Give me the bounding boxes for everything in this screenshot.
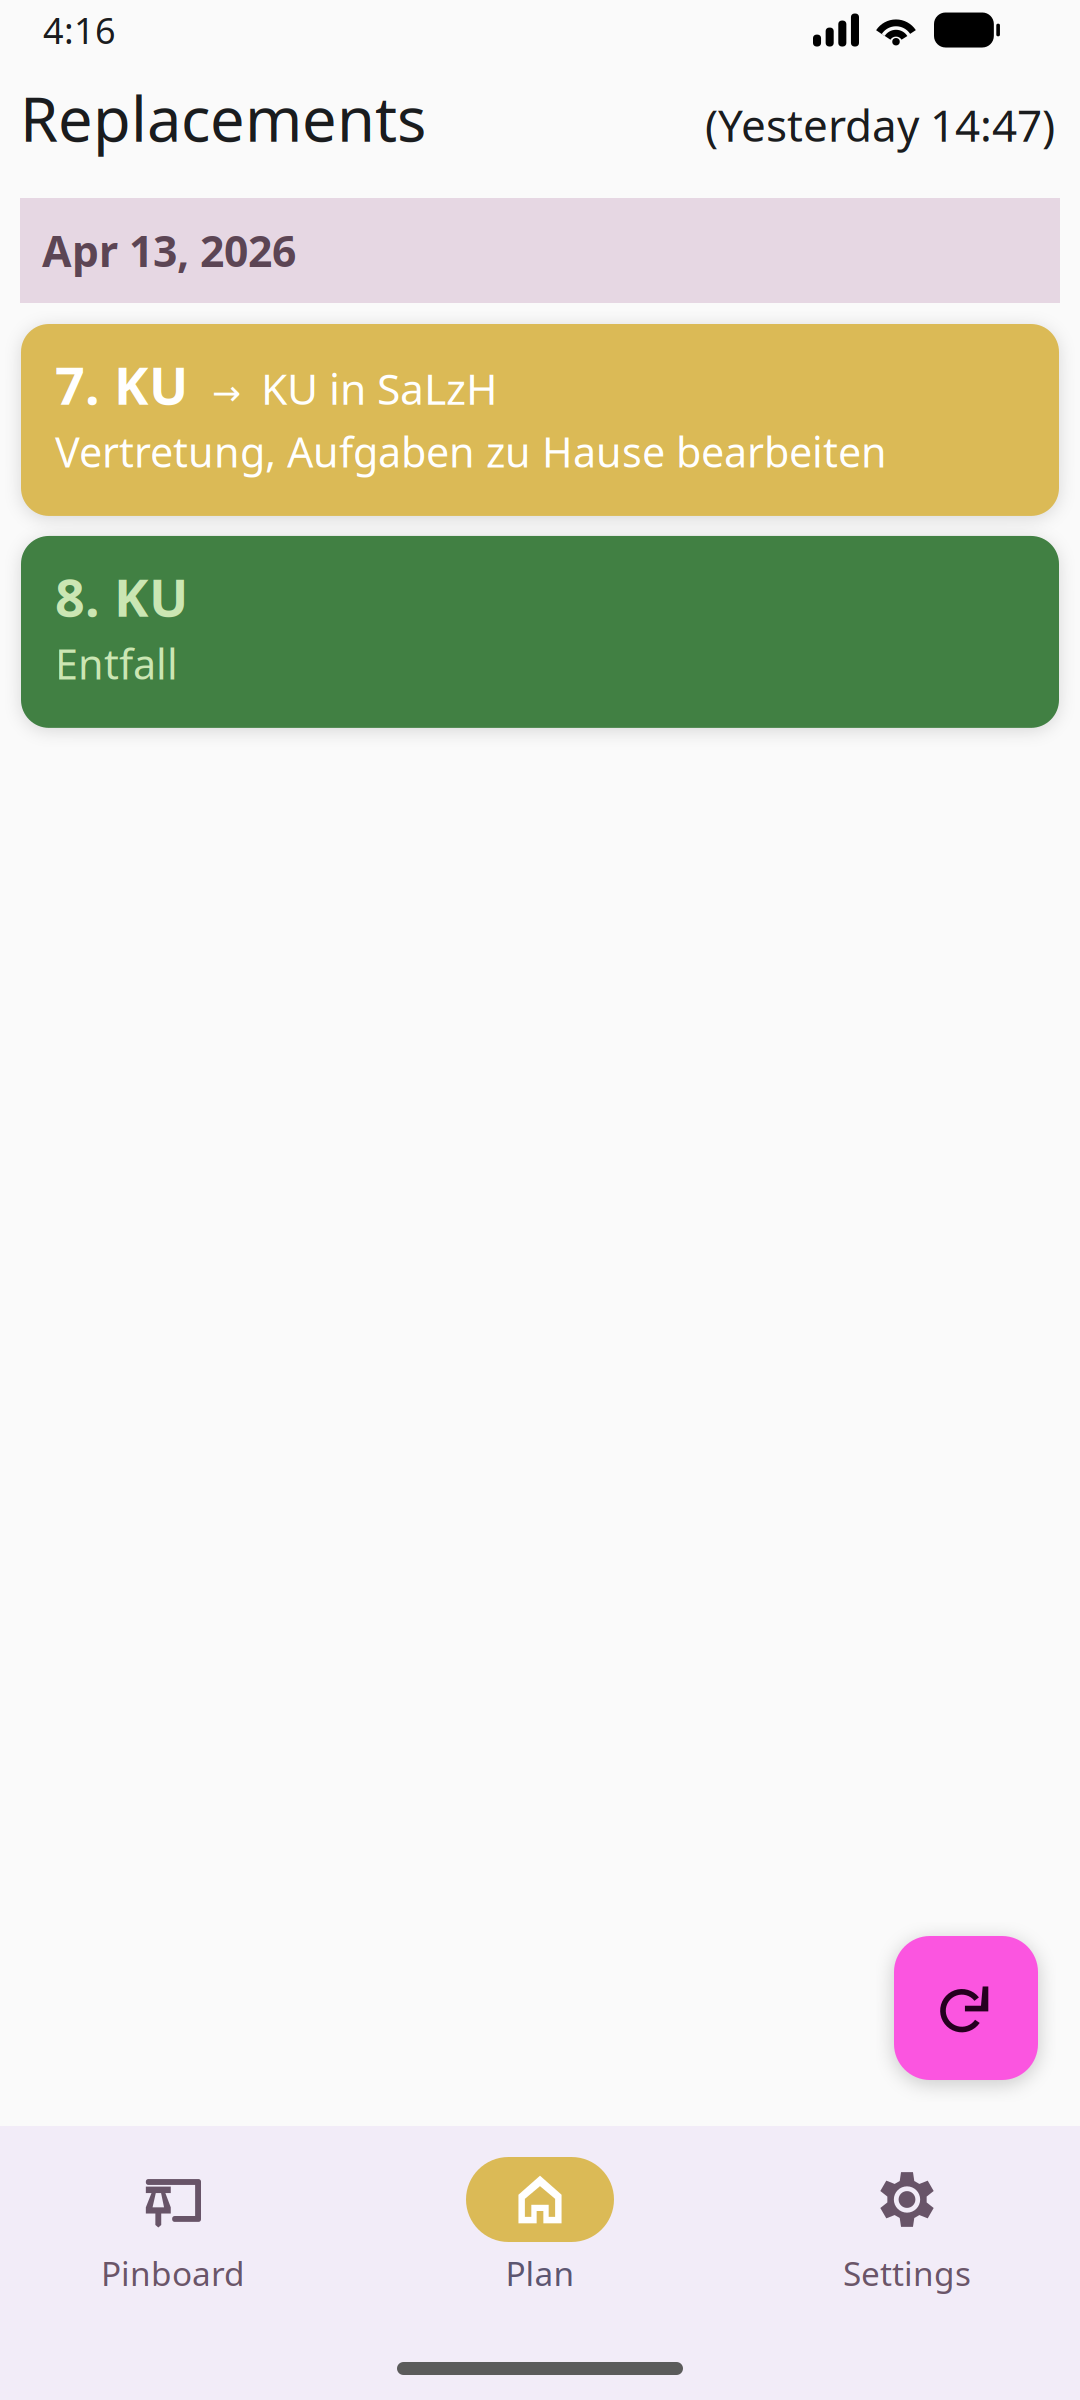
staticText: Apr 13, 2026 bbox=[42, 222, 296, 279]
staticText: (Yesterday 14:47) bbox=[705, 95, 1055, 154]
staticText: Vertretung, Aufgaben zu Hause bearbeiten bbox=[55, 424, 887, 479]
button[interactable]: Plan bbox=[440, 2126, 640, 2295]
staticText: KU in SaLzH bbox=[261, 360, 498, 416]
button[interactable]: Pinboard bbox=[73, 2126, 273, 2295]
staticText: Settings bbox=[843, 2251, 971, 2295]
staticText: → bbox=[212, 373, 241, 412]
staticText: 7. KU bbox=[55, 350, 188, 419]
button[interactable]: Settings bbox=[807, 2126, 1007, 2295]
staticText: Pinboard bbox=[101, 2251, 245, 2295]
staticText: Entfall bbox=[55, 636, 178, 691]
button[interactable]: Refresh bbox=[894, 1936, 1038, 2080]
button[interactable]: 8. KU bbox=[21, 536, 1059, 728]
staticText: Replacements bbox=[20, 77, 426, 159]
staticText: 8. KU bbox=[55, 562, 188, 631]
staticText: 4:16 bbox=[43, 6, 116, 54]
button[interactable]: 7. KU bbox=[21, 324, 1059, 516]
staticText: Plan bbox=[505, 2251, 574, 2295]
